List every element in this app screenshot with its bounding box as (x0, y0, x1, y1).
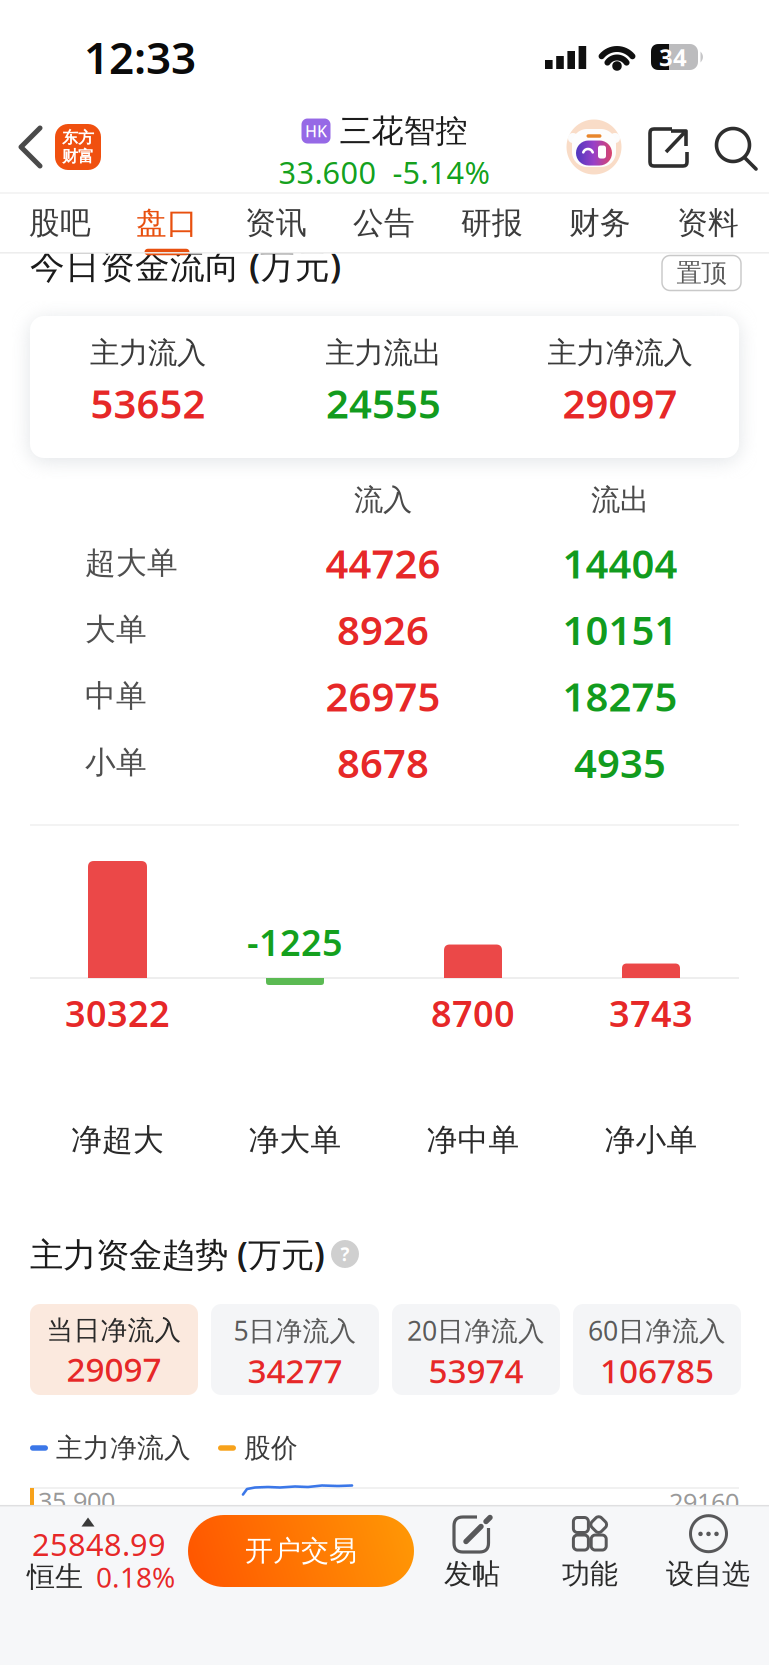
button[interactable]: AI助手 (566, 119, 621, 174)
staticText: 8700 (431, 989, 515, 1037)
staticText: 8678 (337, 736, 429, 789)
button[interactable]: 资料 (658, 195, 758, 251)
button[interactable]: 帮助 (331, 1240, 359, 1268)
staticText: 18275 (562, 669, 677, 722)
staticText: 东方 (62, 128, 94, 147)
staticText: 10151 (562, 603, 677, 656)
button[interactable]: 盘口 (117, 195, 217, 251)
staticText: 三花智控 (339, 111, 467, 151)
staticText: 14404 (562, 536, 677, 589)
staticText: 当日净流入 (46, 1314, 181, 1347)
staticText: 24555 (326, 376, 441, 429)
staticText: 60日净流入 (588, 1313, 726, 1348)
staticText: 主力净流入 (56, 1432, 191, 1464)
staticText: 开户交易 (245, 1534, 357, 1568)
button[interactable]: 分享 (646, 125, 691, 170)
staticText: 恒生 (27, 1560, 83, 1594)
staticText: 今日资金流向 (万元) (30, 242, 341, 288)
staticText: 置顶 (676, 257, 726, 288)
button[interactable]: 股吧 (10, 195, 110, 251)
staticText: 净小单 (604, 1121, 697, 1159)
button[interactable]: 公告 (334, 195, 434, 251)
staticText: 12:33 (84, 28, 196, 86)
staticText: -1225 (247, 918, 343, 966)
staticText: 财富 (62, 146, 94, 166)
staticText: 净中单 (426, 1121, 519, 1159)
staticText: 超大单 (85, 544, 178, 582)
staticText: 大单 (85, 611, 147, 648)
button[interactable]: 25848.99 (25, 1505, 195, 1601)
staticText: 8926 (337, 603, 429, 656)
button[interactable]: 搜索 (711, 123, 761, 173)
staticText: 资讯 (245, 204, 307, 242)
staticText: 0.18% (96, 1558, 175, 1596)
button[interactable]: 20日净流入 (392, 1304, 560, 1395)
button[interactable]: 东方财富 (55, 124, 101, 170)
staticText: 盘口 (136, 204, 198, 242)
staticText: 资料 (677, 204, 739, 242)
staticText: 中单 (85, 677, 147, 715)
staticText: ? (340, 1242, 349, 1266)
staticText: 30322 (65, 989, 170, 1037)
staticText: 29160 (669, 1485, 739, 1519)
button[interactable]: 发帖 (422, 1508, 522, 1590)
staticText: 流出 (591, 482, 649, 518)
staticText: 研报 (461, 204, 523, 242)
staticText: 20日净流入 (407, 1313, 545, 1348)
staticText: 设自选 (666, 1557, 750, 1591)
button[interactable]: 财务 (550, 195, 650, 251)
staticText: 34277 (247, 1348, 342, 1392)
staticText: 29097 (562, 376, 677, 429)
staticText: 53974 (428, 1348, 523, 1392)
button[interactable]: 当日净流入 (30, 1304, 198, 1395)
staticText: 功能 (562, 1557, 618, 1591)
staticText: 净超大 (71, 1121, 164, 1159)
staticText: 33.600 -5.14% (278, 152, 489, 192)
staticText: 净大单 (248, 1121, 341, 1159)
staticText: 流入 (354, 482, 412, 518)
button[interactable]: 设自选 (658, 1508, 758, 1590)
staticText: 公告 (353, 204, 415, 242)
staticText: 主力资金趋势 (万元) (30, 1232, 325, 1276)
staticText: 主力流入 (90, 335, 206, 371)
button[interactable]: 研报 (442, 195, 542, 251)
staticText: 29097 (66, 1347, 161, 1391)
staticText: 股吧 (29, 204, 91, 242)
button[interactable]: 5日净流入 (211, 1304, 379, 1395)
staticText: 发帖 (444, 1557, 500, 1591)
button[interactable]: 功能 (540, 1508, 640, 1590)
staticText: 主力净流入 (547, 335, 692, 371)
staticText: 35,900 (38, 1484, 115, 1518)
button[interactable]: 开户交易 (188, 1515, 414, 1587)
staticText: 25848.99 (32, 1524, 166, 1564)
staticText: 5日净流入 (233, 1313, 356, 1348)
button[interactable]: 返回 (10, 121, 50, 173)
staticText: 财务 (569, 204, 631, 242)
staticText: 股价 (244, 1432, 298, 1464)
staticText: 106785 (600, 1348, 714, 1392)
staticText: 34 (659, 41, 687, 73)
staticText: 44726 (325, 536, 440, 589)
button[interactable]: 资讯 (226, 195, 326, 251)
staticText: 3743 (609, 989, 693, 1037)
staticText: 53652 (90, 376, 205, 429)
button[interactable]: 60日净流入 (573, 1304, 741, 1395)
button[interactable]: 置顶 (662, 255, 741, 290)
staticText: 小单 (85, 744, 147, 781)
staticText: 主力流出 (325, 335, 441, 371)
staticText: 4935 (574, 736, 666, 789)
staticText: HK (305, 120, 327, 142)
staticText: 26975 (325, 669, 440, 722)
